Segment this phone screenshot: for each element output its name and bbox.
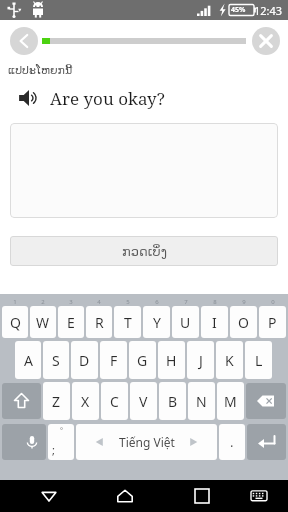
- staticText: ;: [52, 442, 55, 457]
- staticText: 0: [271, 298, 275, 306]
- staticText: D: [79, 351, 90, 370]
- button[interactable]: C: [101, 382, 128, 420]
- staticText: X: [81, 392, 90, 411]
- staticText: °: [60, 426, 63, 436]
- button[interactable]: X: [72, 382, 99, 420]
- staticText: 12:43: [254, 3, 283, 18]
- staticText: 8: [213, 298, 217, 306]
- button[interactable]: Back: [10, 27, 38, 55]
- staticText: F: [110, 351, 118, 370]
- staticText: M: [224, 392, 237, 411]
- button[interactable]: B: [159, 382, 186, 420]
- staticText: V: [139, 392, 148, 411]
- button[interactable]: Enter: [247, 424, 286, 460]
- button[interactable]: G: [129, 341, 156, 379]
- staticText: H: [166, 351, 177, 370]
- staticText: W: [36, 313, 50, 332]
- staticText: 9: [242, 298, 246, 306]
- button[interactable]: Y: [143, 306, 170, 338]
- button[interactable]: Q: [2, 306, 28, 338]
- button[interactable]: R: [86, 306, 112, 338]
- button[interactable]: Z: [43, 382, 70, 420]
- staticText: N: [196, 392, 207, 411]
- staticText: 5: [126, 298, 130, 306]
- button[interactable]: Backspace: [246, 383, 286, 419]
- staticText: 45%: [231, 5, 246, 15]
- staticText: Are you okay?: [50, 87, 165, 110]
- staticText: K: [225, 351, 234, 370]
- staticText: G: [137, 351, 148, 370]
- staticText: J: [199, 351, 203, 370]
- button[interactable]: L: [245, 341, 272, 379]
- staticText: Y: [153, 313, 161, 332]
- button[interactable]: Recent apps: [186, 480, 218, 512]
- staticText: S: [52, 351, 60, 370]
- button[interactable]: J: [187, 341, 214, 379]
- button[interactable]: Switch keyboard: [243, 480, 275, 512]
- button[interactable]: A: [15, 341, 41, 379]
- staticText: O: [238, 313, 249, 332]
- button[interactable]: W: [30, 306, 56, 338]
- staticText: 2: [41, 298, 45, 306]
- button[interactable]: °: [48, 424, 74, 460]
- staticText: T: [124, 313, 132, 332]
- staticText: ກວດເບິ່ງ: [122, 244, 167, 259]
- staticText: Q: [10, 313, 21, 332]
- staticText: L: [255, 351, 263, 370]
- button[interactable]: K: [216, 341, 243, 379]
- button[interactable]: M: [217, 382, 244, 420]
- staticText: 3: [69, 298, 73, 306]
- staticText: I: [212, 313, 217, 332]
- button[interactable]: N: [188, 382, 215, 420]
- staticText: B: [168, 392, 178, 411]
- button[interactable]: T: [114, 306, 141, 338]
- button[interactable]: D: [71, 341, 98, 379]
- button[interactable]: U: [172, 306, 199, 338]
- button[interactable]: Numbers and voice input: [2, 424, 46, 460]
- button[interactable]: .: [219, 424, 245, 460]
- staticText: U: [180, 313, 191, 332]
- staticText: C: [110, 392, 119, 411]
- staticText: 7: [184, 298, 188, 306]
- staticText: ແປປະໂຫຍກນີ້: [8, 64, 73, 77]
- button[interactable]: Back: [33, 480, 65, 512]
- button[interactable]: O: [230, 306, 257, 338]
- button[interactable]: Shift: [2, 383, 41, 419]
- button[interactable]: S: [43, 341, 69, 379]
- staticText: 4: [97, 298, 101, 306]
- button[interactable]: Tiếng Việt: [76, 424, 217, 460]
- staticText: R: [95, 313, 104, 332]
- button[interactable]: E: [58, 306, 84, 338]
- staticText: 6: [155, 298, 159, 306]
- button[interactable]: Home: [109, 480, 141, 512]
- staticText: Tiếng Việt: [119, 434, 175, 450]
- staticText: 1: [13, 298, 17, 306]
- staticText: A: [24, 351, 33, 370]
- button[interactable]: H: [158, 341, 185, 379]
- button[interactable]: P: [259, 306, 286, 338]
- staticText: .: [230, 433, 234, 451]
- staticText: Z: [52, 392, 61, 411]
- button[interactable]: I: [201, 306, 228, 338]
- staticText: P: [268, 313, 277, 332]
- button[interactable]: Close: [252, 27, 280, 55]
- button[interactable]: F: [100, 341, 127, 379]
- button[interactable]: V: [130, 382, 157, 420]
- button[interactable]: ກວດເບິ່ງ: [10, 236, 278, 266]
- button[interactable]: Play audio: [16, 85, 42, 111]
- staticText: E: [67, 313, 75, 332]
- button[interactable]: [10, 123, 278, 218]
